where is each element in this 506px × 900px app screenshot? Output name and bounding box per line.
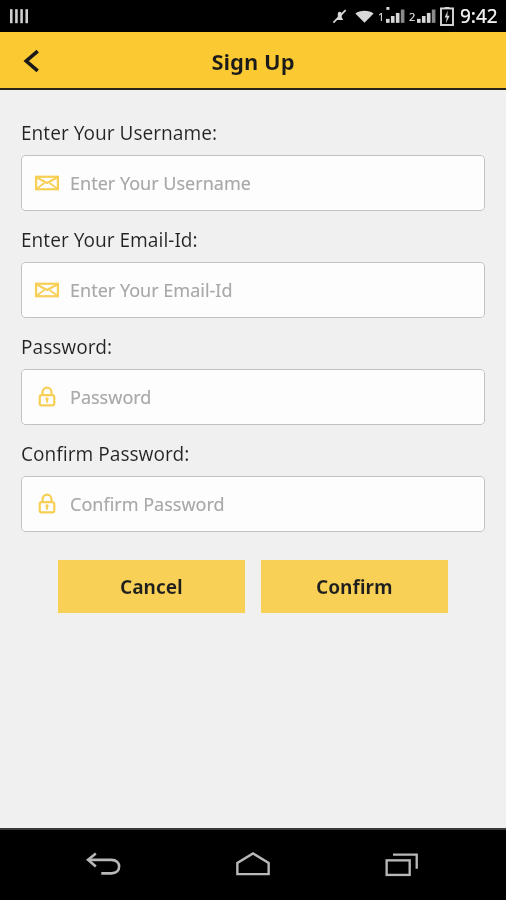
button[interactable]: Enter Your Username [21,155,485,211]
staticText: Enter Your Username: [21,120,218,146]
button[interactable]: Confirm Password [21,476,485,532]
staticText: Cancel [120,574,183,600]
staticText: 9:42 [460,3,498,29]
button[interactable]: Confirm [261,560,448,613]
button[interactable]: Home [208,828,298,900]
button[interactable]: Cancel [58,560,245,613]
button[interactable]: Back [59,828,149,900]
button[interactable]: Enter Your Email-Id [21,262,485,318]
staticText: Confirm Password [70,492,225,517]
button[interactable]: Password [21,369,485,425]
staticText: Password [70,385,152,410]
staticText: Confirm [316,574,393,600]
staticText: Password: [21,334,113,360]
button[interactable]: Recent apps [357,828,447,900]
staticText: Enter Your Email-Id: [21,227,198,253]
staticText: 2 [409,9,416,24]
staticText: Sign Up [211,46,295,76]
button[interactable]: Back [6,35,58,87]
staticText: 1 [378,9,385,24]
staticText: Enter Your Username [70,171,251,196]
staticText: Enter Your Email-Id [70,278,233,303]
staticText: Confirm Password: [21,441,190,467]
